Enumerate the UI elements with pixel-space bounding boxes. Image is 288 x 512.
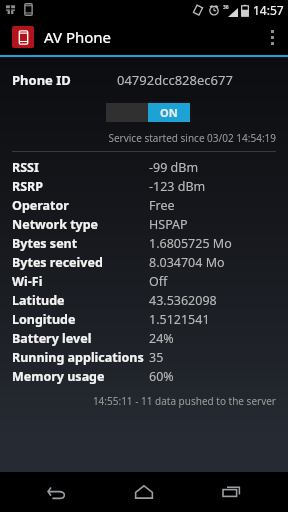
staticText: Network type	[12, 216, 99, 233]
button[interactable]: Longitude	[0, 311, 288, 328]
staticText: AV Phone	[44, 27, 112, 47]
staticText: Latitude	[12, 292, 65, 309]
staticText: Operator	[12, 197, 69, 214]
staticText: Bytes sent	[12, 235, 78, 252]
staticText: 04792dcc828ec677	[117, 71, 233, 89]
staticText: Off	[149, 273, 168, 290]
staticText: -123 dBm	[149, 178, 206, 195]
staticText: Phone ID	[12, 71, 71, 89]
button[interactable]: Battery level	[0, 330, 288, 347]
staticText: 14:57	[253, 2, 284, 18]
button[interactable]: Operator	[0, 197, 288, 214]
staticText: RSRP	[12, 178, 44, 195]
staticText: Bytes received	[12, 254, 103, 271]
staticText: 35	[149, 349, 164, 366]
button[interactable]: Network type	[0, 216, 288, 233]
button[interactable]: Phone ID	[0, 69, 288, 91]
staticText: 24%	[149, 330, 174, 347]
staticText: 8.034704 Mo	[149, 254, 225, 271]
button[interactable]: RSSI	[0, 159, 288, 176]
staticText: HSPAP	[149, 216, 188, 233]
staticText: 1.6805725 Mo	[149, 235, 232, 252]
button[interactable]: RSRP	[0, 178, 288, 195]
staticText: 43.5362098	[149, 292, 217, 309]
button[interactable]: Wi-Fi	[0, 273, 288, 290]
staticText: Longitude	[12, 311, 76, 328]
staticText: Memory usage	[12, 368, 105, 385]
staticText: 60%	[149, 368, 174, 385]
button[interactable]: More options	[256, 19, 288, 55]
staticText: Wi-Fi	[12, 273, 43, 290]
staticText: -99 dBm	[149, 159, 199, 176]
button[interactable]: Back	[27, 472, 87, 512]
staticText: 14:55:11 - 11 data pushed to the server	[0, 394, 276, 408]
staticText: 1.5121541	[149, 311, 210, 328]
staticText: 36	[223, 4, 229, 11]
button[interactable]: Recent apps	[201, 472, 261, 512]
button[interactable]: Latitude	[0, 292, 288, 309]
button[interactable]: Memory usage	[0, 368, 288, 385]
button[interactable]: Running applications	[0, 349, 288, 366]
staticText: Running applications	[12, 349, 144, 366]
button[interactable]: Bytes received	[0, 254, 288, 271]
staticText: Free	[149, 197, 175, 214]
button[interactable]: Home	[114, 472, 174, 512]
button[interactable]: Service toggle, on	[106, 103, 190, 122]
staticText: Battery level	[12, 330, 92, 347]
staticText: ON	[160, 105, 178, 120]
staticText: RSSI	[12, 159, 39, 176]
staticText: Service started since 03/02 14:54:19	[0, 131, 276, 145]
button[interactable]: Bytes sent	[0, 235, 288, 252]
